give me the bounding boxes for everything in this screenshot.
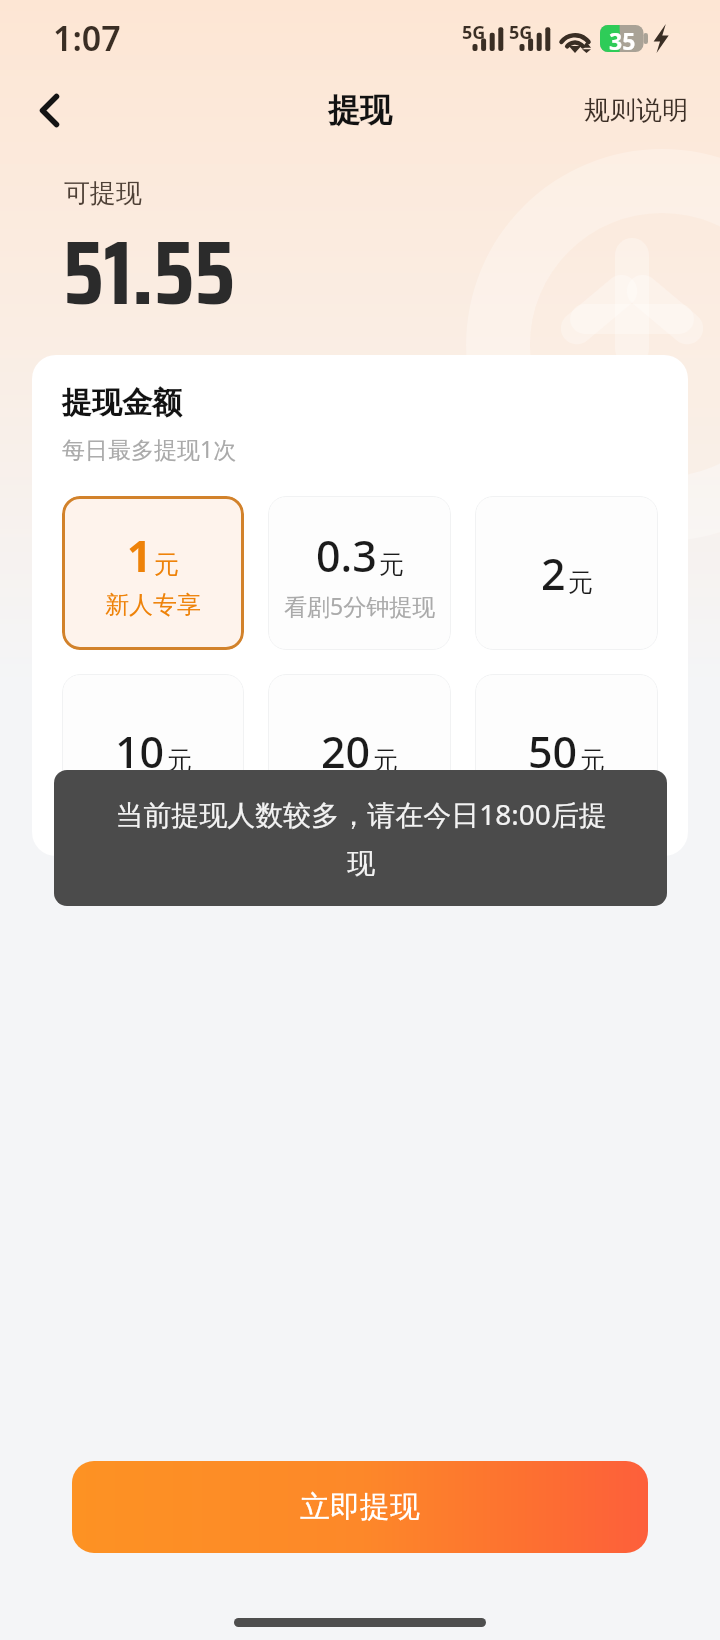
staticText: 提现 xyxy=(328,90,392,130)
staticText: 元 xyxy=(568,567,593,598)
staticText: 20 xyxy=(321,722,371,781)
staticText: 元 xyxy=(154,549,179,580)
button[interactable]: 立即提现 xyxy=(72,1461,648,1553)
staticText: 新人专享 xyxy=(105,590,201,620)
staticText: 5G xyxy=(509,20,533,45)
staticText: 元 xyxy=(373,745,398,776)
staticText: 0.3 xyxy=(316,526,377,585)
staticText: 可提现 xyxy=(64,177,142,210)
staticText: 元 xyxy=(580,745,605,776)
button[interactable]: 10 xyxy=(62,674,244,828)
button[interactable]: Back xyxy=(0,75,98,145)
staticText: 51.55 xyxy=(63,202,235,344)
staticText: 当前提现人数较多，请在今日18:00后提现 xyxy=(102,795,620,881)
staticText: 1:07 xyxy=(53,15,121,61)
staticText: 看剧5分钟提现 xyxy=(284,590,436,621)
staticText: 1 xyxy=(127,526,152,585)
staticText: 35 xyxy=(609,25,636,52)
staticText: 2 xyxy=(541,544,566,603)
button[interactable]: 50 xyxy=(475,674,658,828)
staticText: 10 xyxy=(115,722,165,781)
button[interactable]: 0.3 xyxy=(268,496,451,650)
staticText: 元 xyxy=(167,745,192,776)
staticText: 50 xyxy=(528,722,578,781)
button[interactable]: 1 xyxy=(62,496,244,650)
staticText: 每日最多提现1次 xyxy=(62,433,237,464)
button[interactable]: 20 xyxy=(268,674,451,828)
button[interactable]: 2 xyxy=(475,496,658,650)
staticText: 元 xyxy=(379,549,404,580)
button[interactable]: 规则说明 xyxy=(584,75,720,145)
staticText: 5G xyxy=(462,20,486,45)
staticText: 立即提现 xyxy=(300,1488,420,1526)
staticText: 提现金额 xyxy=(62,384,182,422)
staticText: 规则说明 xyxy=(584,94,688,127)
